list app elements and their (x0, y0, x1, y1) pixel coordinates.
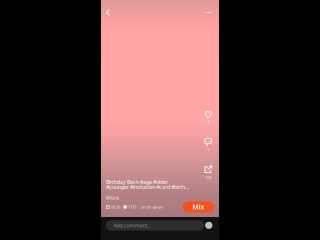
button[interactable]: More (106, 190, 119, 200)
button[interactable]: Your profile (205, 222, 212, 229)
button[interactable]: Mix (183, 201, 214, 213)
staticText: More (106, 194, 119, 201)
staticText: Mix (192, 202, 204, 211)
button[interactable]: Like (201, 111, 216, 125)
button[interactable]: Share (201, 165, 216, 180)
button[interactable]: Add comment... (106, 220, 204, 230)
button[interactable]: More options (202, 7, 214, 19)
staticText: #younger #invitation #card #birth… (106, 183, 189, 191)
button[interactable]: Back (102, 7, 114, 19)
staticText: Add comment... (113, 222, 150, 229)
staticText: 00:20 (111, 204, 120, 210)
staticText: 1 (207, 147, 209, 152)
staticText: 4 (207, 119, 209, 125)
staticText: 105 (205, 175, 211, 180)
button[interactable]: Comment (201, 138, 216, 152)
staticText: Birthday Bash #age #older (106, 178, 168, 185)
staticText: 1175 (128, 204, 136, 210)
staticText: Lorem ipsum (140, 204, 164, 210)
